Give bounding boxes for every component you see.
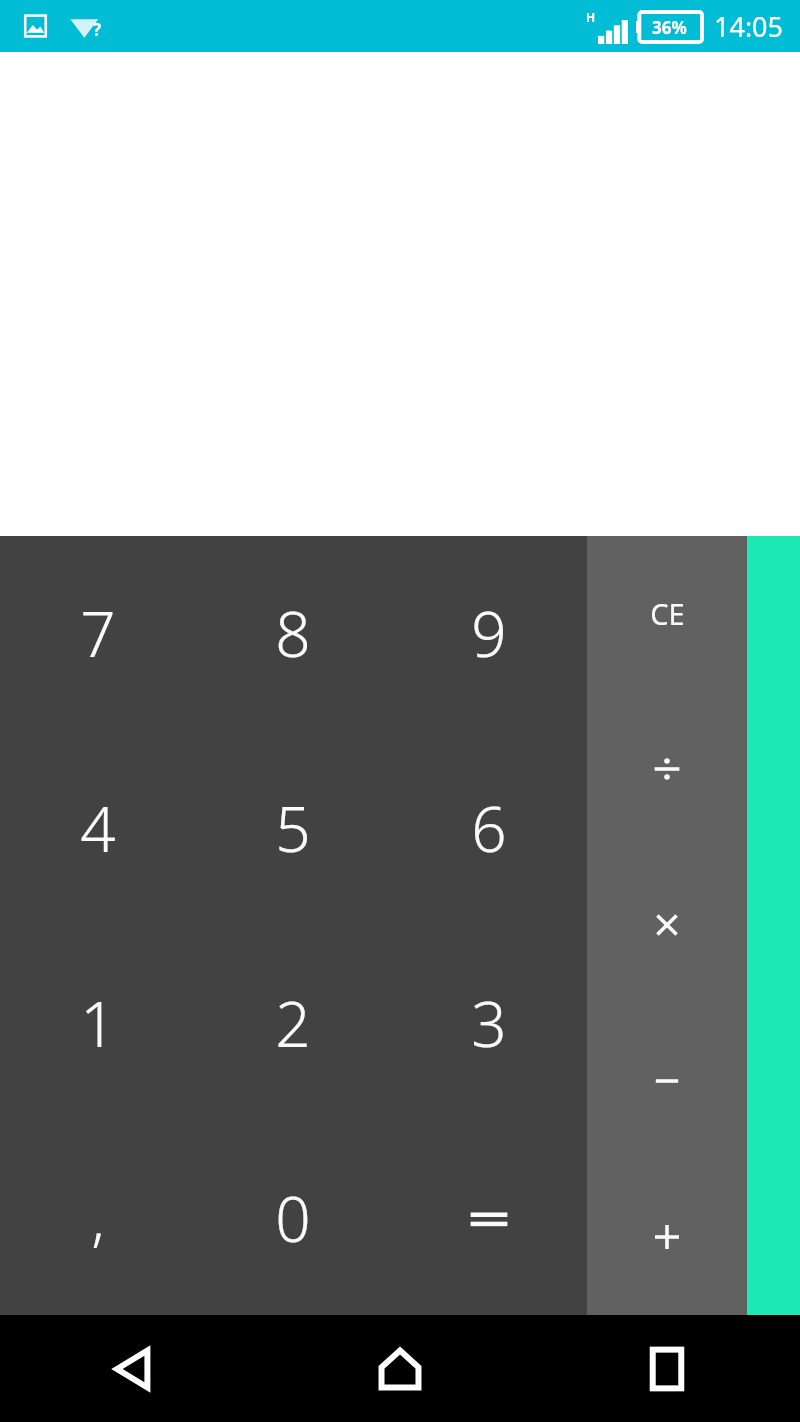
button[interactable]: Recent apps: [533, 1315, 800, 1422]
button[interactable]: Back: [0, 1315, 266, 1422]
staticText: 3: [471, 981, 507, 1065]
button[interactable]: 4: [0, 730, 195, 925]
button[interactable]: 3: [391, 925, 587, 1120]
button[interactable]: Multiply: [587, 847, 747, 1003]
button[interactable]: 5: [195, 730, 391, 925]
staticText: 36%: [652, 16, 687, 39]
staticText: CE: [650, 594, 685, 633]
button[interactable]: Subtract: [587, 1003, 747, 1159]
staticText: 9: [471, 591, 507, 675]
staticText: ?: [93, 18, 102, 41]
staticText: 8: [275, 591, 311, 675]
button[interactable]: Home: [266, 1315, 533, 1422]
button[interactable]: Add: [587, 1159, 747, 1315]
staticText: 2: [275, 981, 311, 1065]
staticText: 1: [80, 981, 116, 1065]
staticText: ,: [91, 1178, 105, 1257]
button[interactable]: 0: [195, 1120, 391, 1315]
staticText: 6: [471, 786, 507, 870]
button[interactable]: 7: [0, 536, 195, 730]
button[interactable]: CE: [587, 536, 747, 691]
button[interactable]: Divide: [587, 691, 747, 847]
button[interactable]: 9: [391, 536, 587, 730]
button[interactable]: ,: [0, 1120, 195, 1315]
staticText: H: [586, 9, 596, 25]
button[interactable]: [391, 1120, 587, 1315]
staticText: 4: [80, 786, 116, 870]
button[interactable]: 6: [391, 730, 587, 925]
staticText: 7: [80, 591, 116, 675]
button[interactable]: 1: [0, 925, 195, 1120]
staticText: 0: [275, 1176, 311, 1260]
button[interactable]: 8: [195, 536, 391, 730]
button[interactable]: 2: [195, 925, 391, 1120]
staticText: 14:05: [714, 8, 784, 45]
staticText: 5: [275, 786, 311, 870]
